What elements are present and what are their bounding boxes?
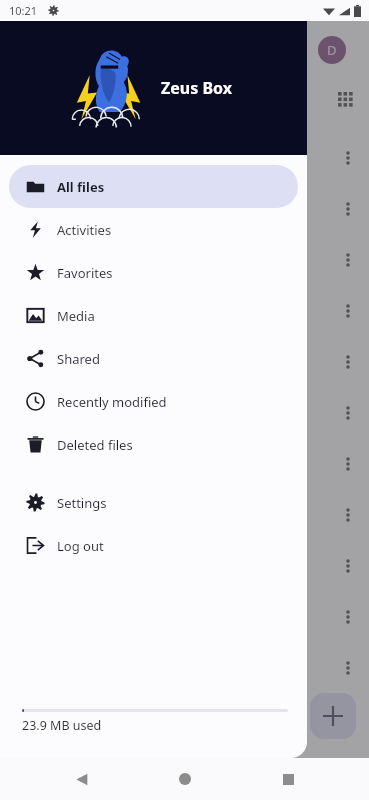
button[interactable]: Account — [318, 36, 346, 64]
button[interactable]: Favorites — [9, 251, 298, 294]
staticText: 23.9 MB used — [22, 717, 102, 734]
button[interactable]: More options — [338, 658, 358, 678]
button[interactable] — [0, 0, 369, 758]
button[interactable]: More options — [338, 403, 358, 423]
staticText: Activities — [57, 221, 112, 239]
button[interactable]: Home — [162, 758, 208, 800]
button[interactable]: Shared — [9, 337, 298, 380]
button[interactable]: More options — [338, 454, 358, 474]
button[interactable]: More options — [338, 556, 358, 576]
staticText: All files — [57, 178, 105, 196]
button[interactable]: More options — [338, 352, 358, 372]
button[interactable]: Back — [58, 758, 104, 800]
staticText: Recently modified — [57, 393, 167, 411]
staticText: Media — [57, 307, 95, 325]
button[interactable]: Recently modified — [9, 380, 298, 423]
button[interactable]: Settings — [9, 481, 298, 524]
button[interactable]: More options — [338, 199, 358, 219]
staticText: Shared — [57, 350, 100, 368]
button[interactable]: Log out — [9, 524, 298, 567]
button[interactable]: Grid view — [338, 92, 358, 112]
staticText: D — [327, 41, 337, 59]
staticText: Deleted files — [57, 436, 133, 454]
button[interactable]: More options — [338, 148, 358, 168]
button[interactable]: Recent apps — [265, 758, 311, 800]
button[interactable]: More options — [338, 607, 358, 627]
button[interactable]: More options — [338, 301, 358, 321]
button[interactable]: More options — [338, 250, 358, 270]
staticText: Log out — [57, 537, 104, 555]
staticText: Zeus Box — [161, 77, 232, 99]
button[interactable]: Activities — [9, 208, 298, 251]
button[interactable]: More options — [338, 505, 358, 525]
staticText: 10:21 — [9, 3, 38, 18]
staticText: Settings — [57, 494, 107, 512]
button[interactable]: Add — [310, 693, 356, 739]
button[interactable]: Deleted files — [9, 423, 298, 466]
button[interactable]: Media — [9, 294, 298, 337]
staticText: Favorites — [57, 264, 113, 282]
button[interactable]: All files — [9, 165, 298, 208]
